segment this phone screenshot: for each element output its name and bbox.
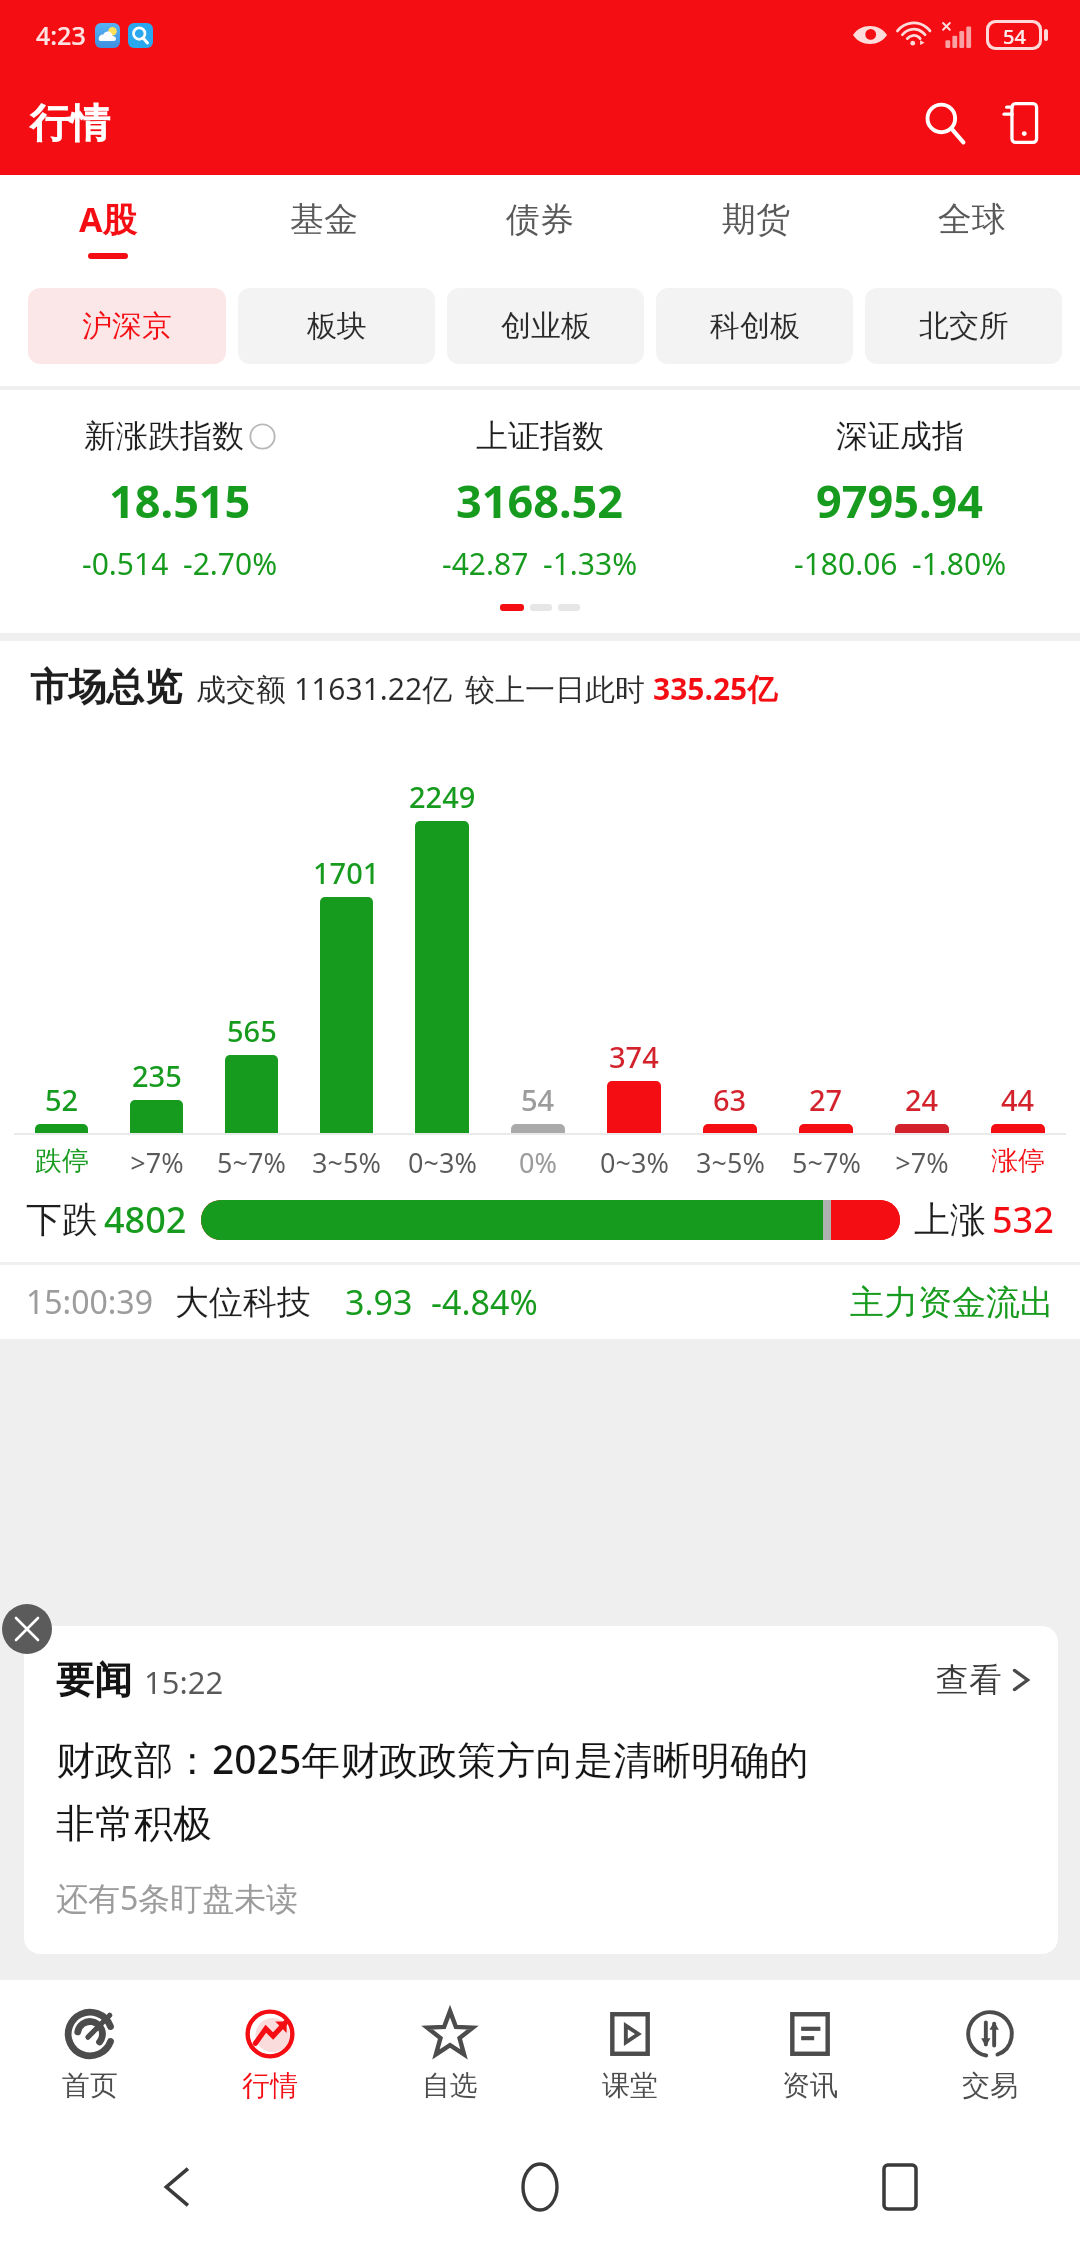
staticText: 大位科技	[175, 1281, 311, 1324]
staticText: -180.06	[794, 543, 898, 584]
button[interactable]: 债券	[432, 175, 648, 280]
button[interactable]: 深证成指	[720, 416, 1080, 584]
staticText: 3~5%	[696, 1144, 765, 1181]
staticText: 374	[609, 1037, 659, 1076]
staticText: 市场总览	[30, 663, 182, 711]
button[interactable]: 沪深京	[28, 288, 226, 364]
staticText: 18.515	[109, 470, 251, 531]
button[interactable]: 查看	[936, 1659, 1032, 1701]
staticText: 2249	[409, 777, 476, 816]
staticText: 板块	[307, 307, 367, 345]
staticText: 0%	[519, 1144, 557, 1181]
staticText: 565	[227, 1011, 277, 1050]
staticText: 课堂	[602, 2068, 658, 2103]
staticText: 27	[809, 1080, 843, 1119]
staticText: 债券	[506, 198, 574, 241]
staticText: 44	[1001, 1080, 1035, 1119]
button[interactable]: Search	[908, 86, 982, 160]
button[interactable]: 期货	[648, 175, 864, 280]
button[interactable]: Recents	[720, 2130, 1080, 2244]
button[interactable]: 板块	[238, 288, 435, 364]
button[interactable]: 科创板	[656, 288, 853, 364]
staticText: -1.33%	[543, 543, 638, 584]
staticText: 235	[132, 1056, 182, 1095]
button[interactable]: 全球	[864, 175, 1080, 280]
staticText: 3.93	[345, 1279, 413, 1325]
staticText: 24	[905, 1080, 939, 1119]
staticText: 上涨	[914, 1197, 986, 1242]
staticText: 涨停	[991, 1144, 1045, 1178]
staticText: -4.84%	[431, 1279, 538, 1325]
staticText: 63	[713, 1080, 747, 1119]
staticText: 财政部：2025年财政政策方向是清晰明确的	[56, 1732, 809, 1785]
staticText: 11631.22亿	[294, 668, 453, 709]
button[interactable]: A股	[0, 175, 216, 280]
staticText: 深证成指	[836, 416, 964, 456]
staticText: 5~7%	[792, 1144, 861, 1181]
staticText: 科创板	[710, 307, 800, 345]
staticText: 9795.94	[816, 470, 984, 531]
staticText: -42.87	[442, 543, 529, 584]
staticText: 54	[521, 1080, 555, 1119]
button[interactable]: 北交所	[865, 288, 1062, 364]
staticText: 非常积极	[56, 1799, 212, 1848]
staticText: 新涨跌指数	[84, 416, 244, 456]
button[interactable]: 新涨跌指数	[0, 416, 360, 584]
staticText: 54	[1003, 23, 1026, 47]
staticText: -2.70%	[183, 543, 278, 584]
button[interactable]: 交易	[900, 1980, 1080, 2130]
staticText: 52	[45, 1080, 79, 1119]
staticText: 3~5%	[312, 1144, 381, 1181]
button[interactable]: Back	[0, 2130, 360, 2244]
button[interactable]: Trade	[982, 86, 1056, 160]
staticText: 下跌	[26, 1197, 98, 1242]
button[interactable]: 资讯	[720, 1980, 900, 2130]
staticText: 335.25亿	[653, 668, 778, 709]
button[interactable]: 要闻	[24, 1626, 1058, 1954]
staticText: >7%	[130, 1144, 184, 1181]
staticText: 还有5条盯盘未读	[56, 1876, 299, 1920]
staticText: 查看	[936, 1659, 1002, 1701]
staticText: 4802	[104, 1195, 187, 1244]
staticText: 要闻	[56, 1656, 132, 1704]
staticText: 1701	[313, 853, 380, 892]
staticText: -1.80%	[912, 543, 1007, 584]
staticText: 行情	[30, 98, 110, 148]
staticText: 上证指数	[476, 416, 604, 456]
staticText: 交易	[962, 2068, 1018, 2103]
staticText: 5~7%	[217, 1144, 286, 1181]
staticText: 0~3%	[408, 1144, 477, 1181]
staticText: 532	[992, 1195, 1054, 1244]
staticText: >7%	[895, 1144, 949, 1181]
staticText: 较上一日此时	[465, 671, 645, 709]
staticText: 基金	[290, 198, 358, 241]
button[interactable]: Close	[2, 1604, 52, 1654]
staticText: 主力资金流出	[850, 1281, 1054, 1324]
staticText: 自选	[422, 2068, 478, 2103]
staticText: 0~3%	[600, 1144, 669, 1181]
button[interactable]: 创业板	[447, 288, 644, 364]
staticText: 4:23	[36, 18, 86, 52]
staticText: 3168.52	[456, 470, 624, 531]
staticText: 沪深京	[82, 307, 172, 345]
staticText: 15:00:39	[26, 1280, 153, 1324]
button[interactable]: 首页	[0, 1980, 180, 2130]
staticText: A股	[79, 196, 137, 242]
staticText: 全球	[938, 198, 1006, 241]
button[interactable]: 上证指数	[360, 416, 720, 584]
staticText: 资讯	[782, 2068, 838, 2103]
staticText: 北交所	[919, 307, 1009, 345]
button[interactable]: Home	[360, 2130, 720, 2244]
staticText: 成交额	[196, 671, 286, 709]
button[interactable]: 基金	[216, 175, 432, 280]
staticText: 跌停	[35, 1144, 89, 1178]
staticText: 创业板	[501, 307, 591, 345]
button[interactable]: 课堂	[540, 1980, 720, 2130]
button[interactable]: 行情	[180, 1980, 360, 2130]
staticText: 期货	[722, 198, 790, 241]
staticText: -0.514	[82, 543, 169, 584]
staticText: 首页	[62, 2068, 118, 2103]
staticText: 15:22	[144, 1661, 224, 1703]
button[interactable]: 自选	[360, 1980, 540, 2130]
staticText: 行情	[242, 2068, 298, 2103]
